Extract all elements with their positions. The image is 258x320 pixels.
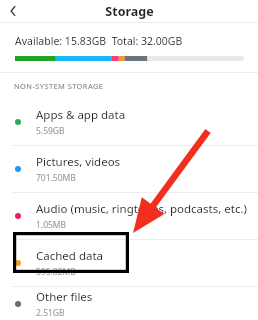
staticText: 595.82MB	[36, 266, 76, 278]
staticText: 701.50MB	[36, 172, 76, 184]
staticText: Audio (music, ringtones, podcasts, etc.)	[36, 201, 247, 217]
button[interactable]: Apps & app data	[0, 99, 258, 146]
staticText: Apps & app data	[36, 107, 126, 123]
button[interactable]: Pictures, videos	[0, 146, 258, 193]
staticText: Cached data	[36, 248, 104, 264]
staticText: 5.59GB	[36, 125, 65, 137]
staticText: 2.51GB	[36, 307, 65, 319]
staticText: Available: 15.83GB Total: 32.00GB	[15, 34, 183, 48]
button[interactable]: Cached data	[0, 240, 258, 287]
staticText: Storage	[105, 3, 154, 20]
staticText: Pictures, videos	[36, 154, 121, 170]
button[interactable]: Back	[0, 0, 26, 22]
staticText: NON-SYSTEM STORAGE	[14, 81, 104, 91]
button[interactable]: Other files	[0, 287, 258, 320]
staticText: 1.05MB	[36, 219, 67, 231]
staticText: Other files	[36, 289, 93, 305]
button[interactable]: Audio (music, ringtones, podcasts, etc.)	[0, 193, 258, 240]
